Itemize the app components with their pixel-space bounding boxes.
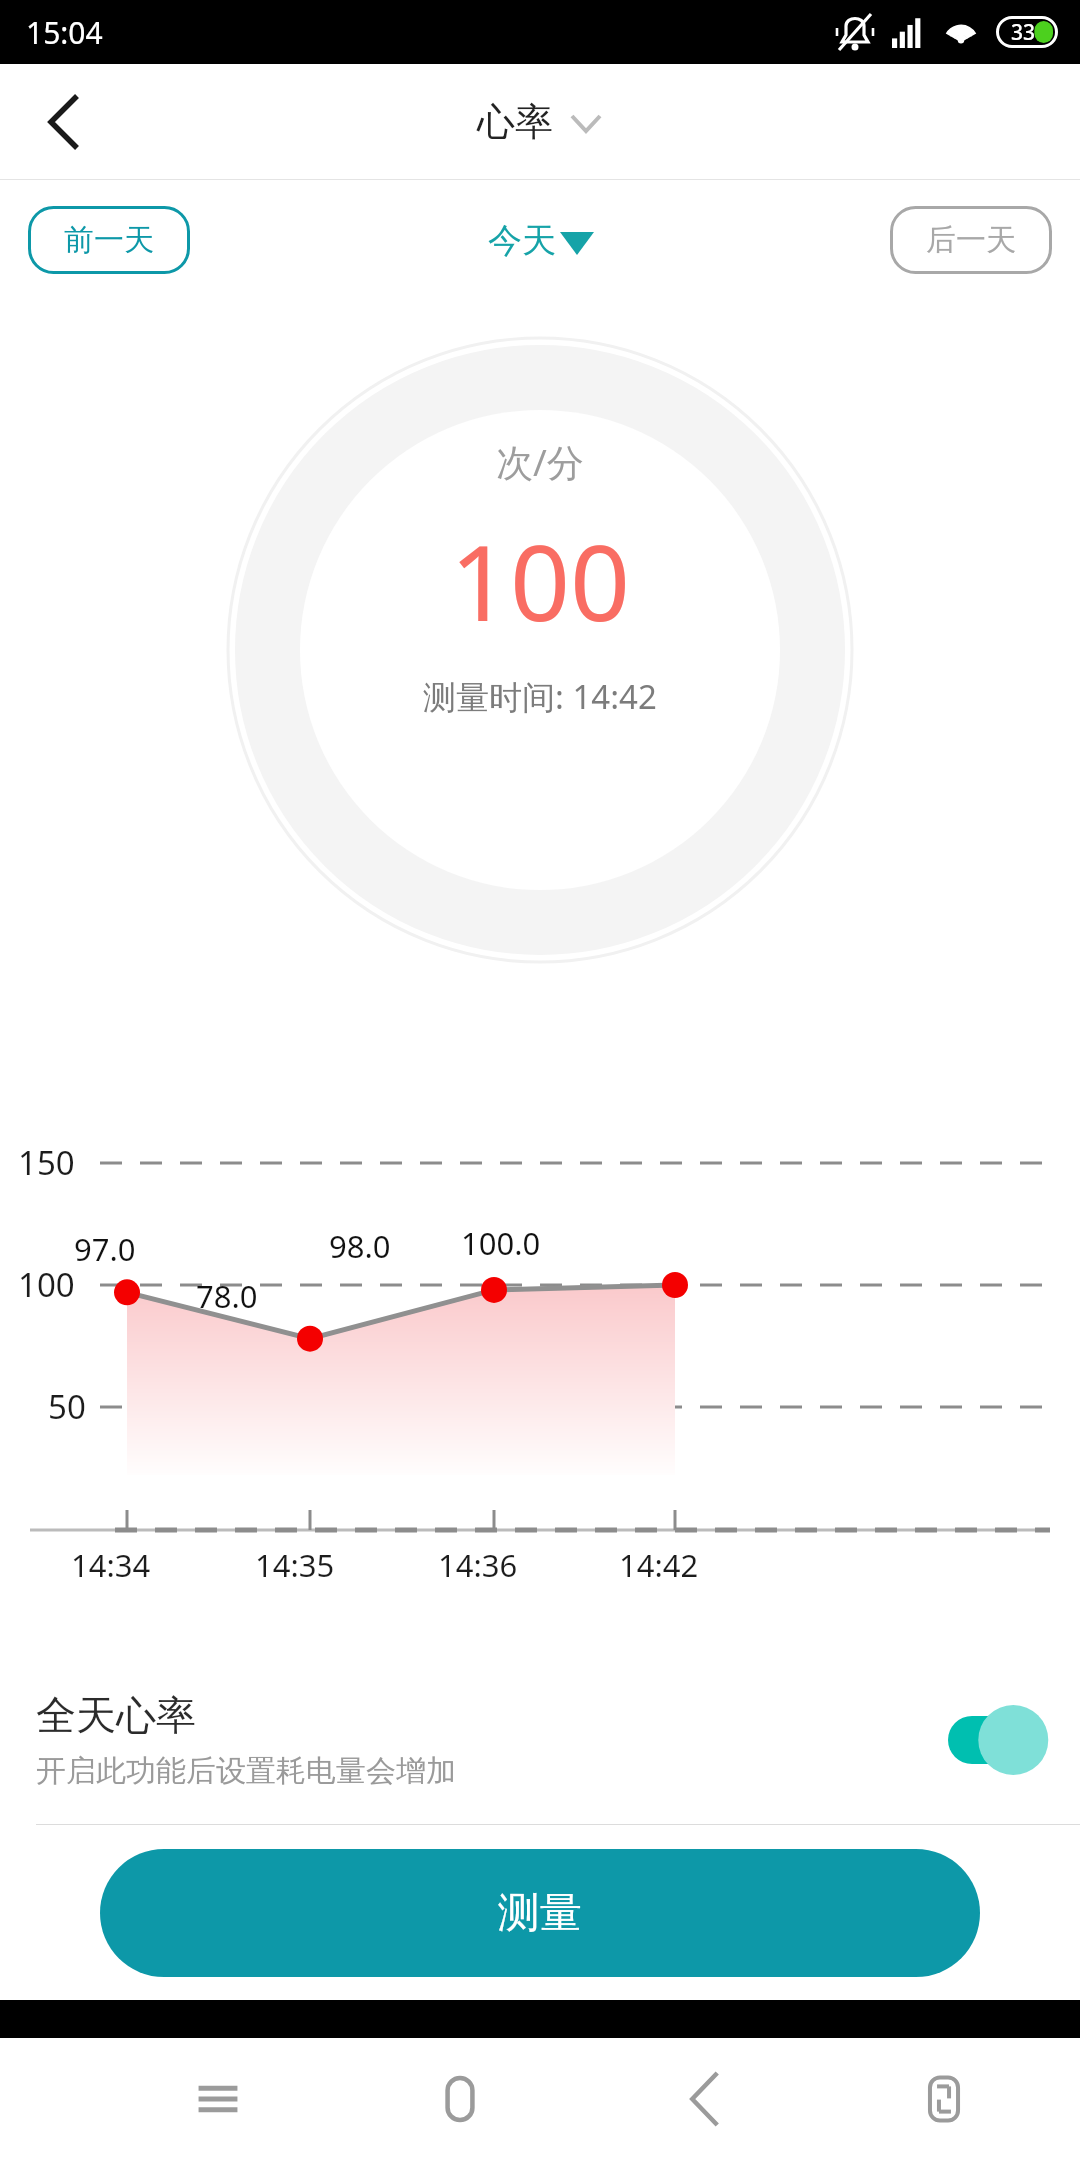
button[interactable]: Menu	[172, 2053, 264, 2145]
button[interactable]: Back	[656, 2053, 748, 2145]
staticText: 100	[450, 509, 631, 652]
button[interactable]: 前一天	[28, 206, 190, 274]
button[interactable]: Home	[414, 2053, 506, 2145]
button[interactable]: Recents	[898, 2053, 990, 2145]
staticText: 78.0	[196, 1275, 258, 1317]
staticText: 100	[18, 1262, 75, 1307]
button[interactable]: 今天	[474, 209, 606, 272]
button[interactable]: 后一天	[890, 206, 1052, 274]
button[interactable]: 测量	[100, 1849, 980, 1977]
staticText: 98.0	[329, 1225, 391, 1267]
button[interactable]: All day heart rate toggle	[948, 1702, 1044, 1778]
staticText: 33	[1011, 18, 1036, 47]
staticText: 14:35	[255, 1544, 335, 1586]
staticText: 14:34	[71, 1544, 151, 1586]
staticText: 100.0	[461, 1222, 541, 1264]
staticText: 14:36	[438, 1544, 518, 1586]
staticText: 15:04	[26, 12, 103, 53]
staticText: 150	[18, 1140, 75, 1185]
staticText: 全天心率	[36, 1690, 196, 1740]
staticText: 次/分	[496, 436, 584, 487]
staticText: 心率	[477, 98, 553, 146]
staticText: 今天	[488, 219, 556, 262]
button[interactable]: Expand	[569, 105, 603, 139]
staticText: 测量时间: 14:42	[423, 674, 657, 719]
staticText: 后一天	[926, 221, 1016, 259]
staticText: 前一天	[64, 221, 154, 259]
staticText: 14:42	[619, 1544, 699, 1586]
button[interactable]: Back	[22, 80, 106, 164]
staticText: 50	[48, 1384, 86, 1429]
staticText: 测量	[498, 1887, 582, 1940]
staticText: 97.0	[74, 1228, 136, 1270]
staticText: 开启此功能后设置耗电量会增加	[36, 1752, 456, 1790]
button[interactable]: 全天心率	[0, 1665, 1080, 1815]
